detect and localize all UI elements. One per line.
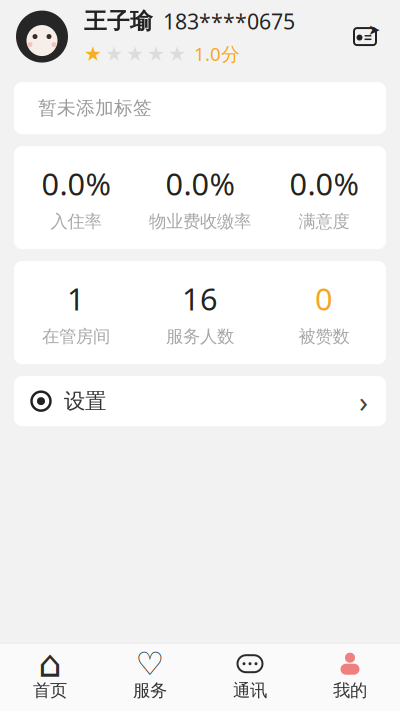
staticText: ★ (168, 42, 186, 65)
staticText: 0 (315, 278, 333, 319)
staticText: ➤ (368, 21, 380, 38)
staticText: 通讯 (233, 680, 267, 701)
staticText: 设置 (64, 388, 106, 414)
staticText: 在管房间 (42, 326, 110, 347)
staticText: 0.0% (289, 163, 358, 204)
staticText: ★ (126, 42, 144, 65)
button[interactable]: ⌂ (0, 644, 100, 711)
button[interactable]: ♡ (100, 644, 200, 711)
staticText: › (359, 382, 368, 421)
staticText: 1.0分 (194, 41, 240, 66)
staticText: ♡ (135, 646, 164, 682)
staticText: ⌂ (38, 642, 62, 685)
staticText: 入住率 (50, 211, 101, 232)
button[interactable]: 暂未添加标签 (0, 82, 400, 134)
staticText: 首页 (33, 680, 67, 701)
staticText: 16 (182, 278, 218, 319)
button[interactable]: 设置 (0, 376, 400, 426)
staticText: 服务人数 (166, 326, 234, 347)
staticText: ★ (147, 42, 165, 65)
staticText: 1 (67, 278, 85, 319)
staticText: 183****0675 (163, 7, 295, 35)
button[interactable]: 分享名片 (336, 15, 394, 59)
staticText: 王子瑜 (84, 7, 153, 35)
staticText: 满意度 (298, 211, 349, 232)
staticText: ★ (105, 42, 123, 65)
button[interactable]: 我的 (300, 644, 400, 711)
staticText: 0.0% (41, 163, 110, 204)
staticText: 物业费收缴率 (149, 211, 251, 232)
staticText: 被赞数 (298, 326, 349, 347)
staticText: 服务 (133, 680, 167, 701)
staticText: 0.0% (165, 163, 234, 204)
staticText: 我的 (333, 680, 367, 701)
button[interactable]: 通讯 (200, 644, 300, 711)
staticText: ★ (84, 42, 102, 65)
staticText: 暂未添加标签 (38, 97, 152, 120)
